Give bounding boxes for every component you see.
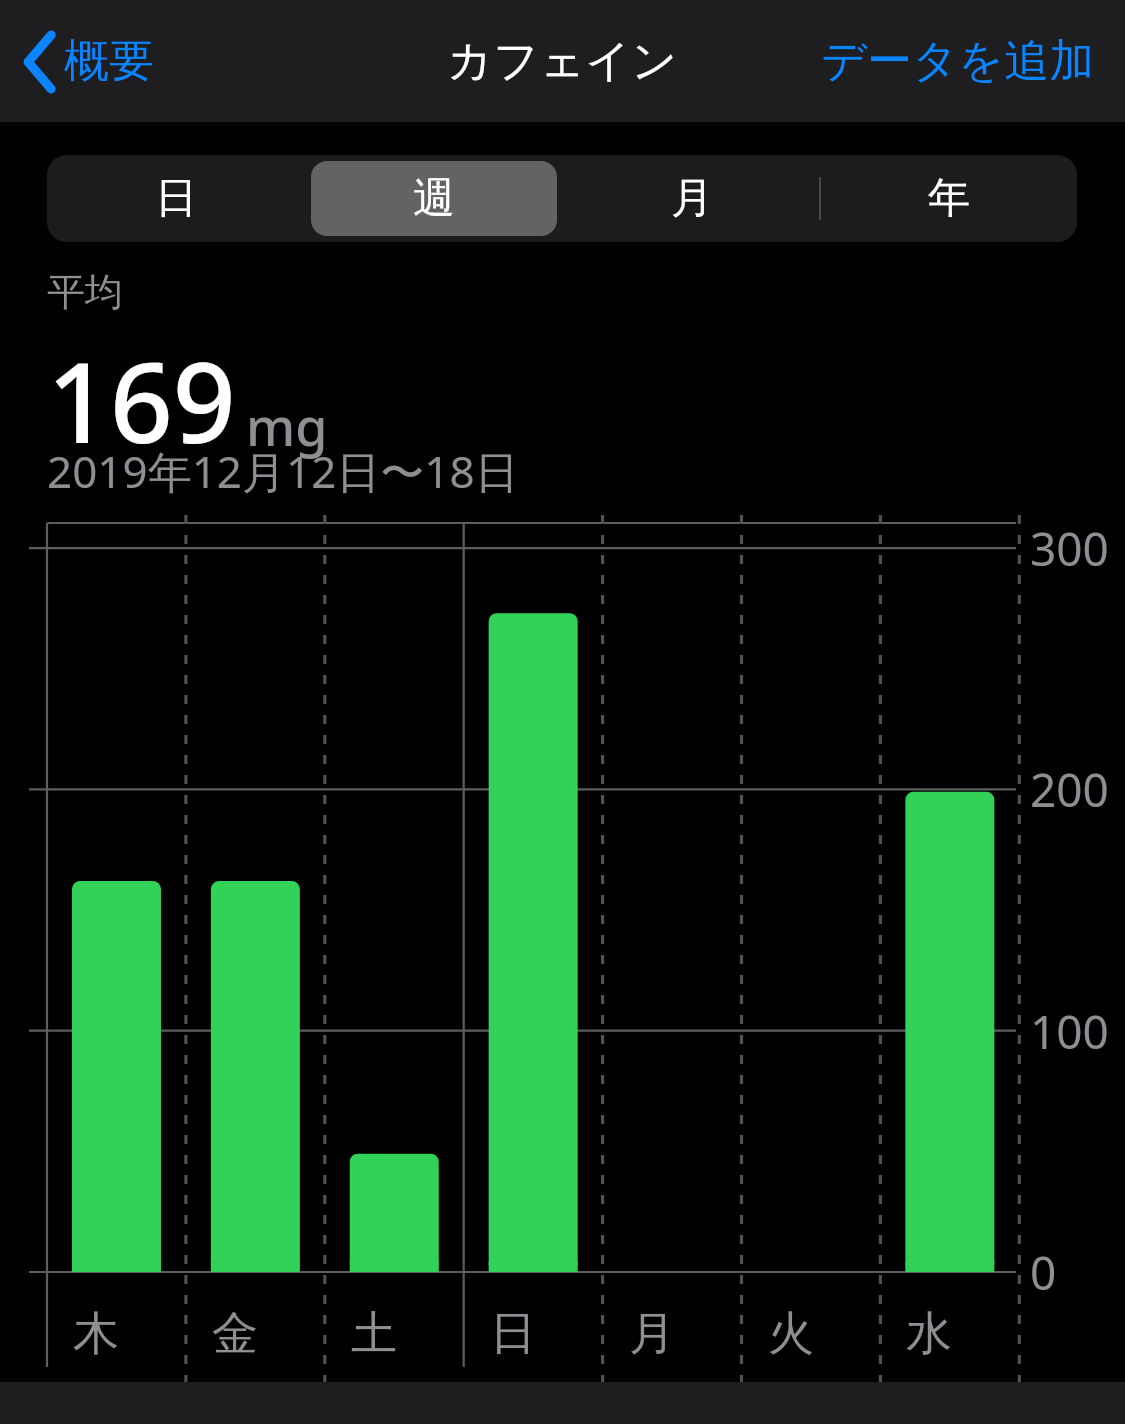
button[interactable]: 月 [629, 1305, 675, 1363]
staticText: 週 [413, 172, 455, 225]
staticText: 0 [1030, 1241, 1057, 1304]
button[interactable]: 年 [821, 155, 1077, 242]
button[interactable]: 木 [73, 1305, 119, 1363]
button[interactable]: 土 [351, 1305, 397, 1363]
staticText: 月 [671, 172, 713, 225]
staticText: 平均 [47, 268, 123, 316]
button[interactable]: 水 [906, 1305, 952, 1363]
button[interactable]: 週 [305, 155, 563, 242]
staticText: mg [246, 390, 328, 461]
staticText: 100 [1030, 1000, 1109, 1063]
button[interactable]: 月 [563, 155, 821, 242]
button[interactable]: 火 [768, 1305, 814, 1363]
button[interactable]: データを追加 [813, 23, 1103, 100]
staticText: カフェイン [447, 33, 678, 90]
staticText: 概要 [64, 33, 154, 90]
button[interactable]: 金 [212, 1305, 258, 1363]
button[interactable]: 日 [490, 1305, 536, 1363]
button[interactable]: 戻る 概要 [18, 23, 162, 100]
button[interactable]: 日 [47, 155, 305, 242]
staticText: データを追加 [821, 33, 1095, 90]
staticText: 200 [1030, 758, 1109, 821]
staticText: 年 [928, 172, 970, 225]
staticText: 169 [47, 325, 236, 475]
staticText: 2019年12月12日〜18日 [47, 441, 519, 501]
staticText: 日 [155, 172, 197, 225]
staticText: 300 [1030, 517, 1109, 580]
